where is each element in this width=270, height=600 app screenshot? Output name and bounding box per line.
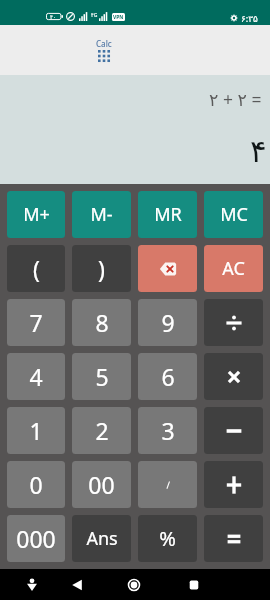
button[interactable]: 6 xyxy=(138,353,197,400)
button[interactable]: % xyxy=(138,515,197,562)
button[interactable]: MC xyxy=(204,191,263,238)
staticText: ۴G xyxy=(91,12,98,19)
button[interactable]: Add xyxy=(204,461,263,508)
staticText: 6 xyxy=(161,361,175,392)
button[interactable]: Back xyxy=(64,572,90,598)
button[interactable]: Recents xyxy=(181,572,207,598)
other: Do not disturb xyxy=(66,12,75,21)
button[interactable]: 8 xyxy=(72,299,131,346)
staticText: MC xyxy=(220,202,248,227)
staticText: ) xyxy=(98,253,105,284)
other: Battery 40% xyxy=(46,13,63,20)
button[interactable]: AC xyxy=(204,245,263,292)
button[interactable]: Ans xyxy=(72,515,131,562)
staticText: 000 xyxy=(16,523,56,554)
staticText: 1 xyxy=(29,415,43,446)
staticText: 7 xyxy=(29,307,43,338)
staticText: M- xyxy=(90,202,113,227)
staticText: 3 xyxy=(161,415,175,446)
staticText: VPN xyxy=(113,14,124,21)
button[interactable]: 3 xyxy=(138,407,197,454)
staticText: 4 xyxy=(29,361,43,392)
staticText: ۶:۳۵ xyxy=(241,12,258,24)
button[interactable]: 00 xyxy=(72,461,131,508)
button[interactable]: 000 xyxy=(7,515,65,562)
button[interactable]: Backspace xyxy=(138,245,197,292)
staticText: ۴ xyxy=(250,133,267,169)
button[interactable]: MR xyxy=(138,191,197,238)
button[interactable]: Decimal xyxy=(138,461,197,508)
staticText: 5 xyxy=(95,361,109,392)
staticText: Ans xyxy=(86,526,118,551)
staticText: ( xyxy=(33,253,40,284)
staticText: ۲ + ۲ = xyxy=(209,87,262,111)
button[interactable]: 4 xyxy=(7,353,65,400)
button[interactable]: ) xyxy=(72,245,131,292)
button[interactable]: Calc xyxy=(88,38,120,62)
button[interactable]: Subtract xyxy=(204,407,263,454)
button[interactable]: 9 xyxy=(138,299,197,346)
staticText: 0 xyxy=(29,469,43,500)
button[interactable]: 7 xyxy=(7,299,65,346)
button[interactable]: 2 xyxy=(72,407,131,454)
button[interactable]: 0 xyxy=(7,461,65,508)
staticText: % xyxy=(159,525,176,552)
staticText: 9 xyxy=(161,307,175,338)
button[interactable]: Home xyxy=(121,572,147,598)
other: Settings xyxy=(230,14,238,22)
button[interactable]: M- xyxy=(72,191,131,238)
button[interactable]: 5 xyxy=(72,353,131,400)
staticText: AC xyxy=(222,256,245,281)
staticText: M+ xyxy=(23,202,50,227)
staticText: Calc xyxy=(96,38,112,49)
button[interactable]: Equals xyxy=(204,515,263,562)
staticText: ۴۰ xyxy=(50,14,56,20)
button[interactable]: Divide xyxy=(204,299,263,346)
staticText: MR xyxy=(154,202,182,227)
staticText: 8 xyxy=(95,307,109,338)
staticText: 00 xyxy=(88,469,115,500)
button[interactable]: ( xyxy=(7,245,65,292)
button[interactable]: Multiply xyxy=(204,353,263,400)
button[interactable]: Hide keyboard xyxy=(19,572,45,598)
staticText: 2 xyxy=(95,415,109,446)
button[interactable]: M+ xyxy=(7,191,65,238)
button[interactable]: 1 xyxy=(7,407,65,454)
